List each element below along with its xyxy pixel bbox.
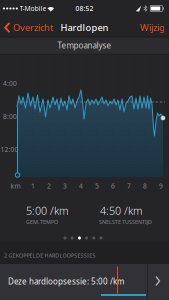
staticText: Hardlopen	[60, 21, 108, 34]
staticText: 12:00	[0, 145, 18, 154]
button[interactable]: Overzicht	[0, 21, 80, 34]
staticText: 9	[159, 182, 163, 190]
staticText: 7	[127, 182, 131, 190]
staticText: SNELSTE TUSSENTIJD	[99, 218, 152, 226]
staticText: Deze hardloopsessie: 5:00 /km	[8, 276, 124, 287]
staticText: 8:00	[3, 112, 17, 121]
staticText: 1	[31, 182, 35, 190]
staticText: 2	[47, 182, 51, 190]
staticText: 4	[79, 182, 83, 190]
staticText: 5	[95, 182, 99, 190]
staticText: GEM. TEMPO	[26, 218, 58, 226]
staticText: Wijzig	[140, 21, 165, 34]
staticText: 5:00 /km	[26, 203, 69, 218]
staticText: Overzicht	[13, 21, 53, 34]
staticText: 6	[111, 182, 115, 190]
button[interactable]: Wijzig	[109, 21, 169, 34]
staticText: 4:50 /km	[100, 203, 143, 218]
staticText: 3	[63, 182, 67, 190]
staticText: km	[10, 182, 20, 190]
staticText: T-Mobile	[19, 4, 46, 13]
staticText: 2 GEKOPPELDE HARDLOOPSESSIES	[4, 252, 95, 259]
staticText: 08:52	[75, 4, 93, 13]
staticText: 8	[143, 182, 147, 190]
button[interactable]: Deze hardloopsessie: 5:00 /km	[0, 264, 169, 300]
staticText: Tempoanalyse	[57, 40, 111, 51]
staticText: 4:00	[3, 79, 17, 88]
